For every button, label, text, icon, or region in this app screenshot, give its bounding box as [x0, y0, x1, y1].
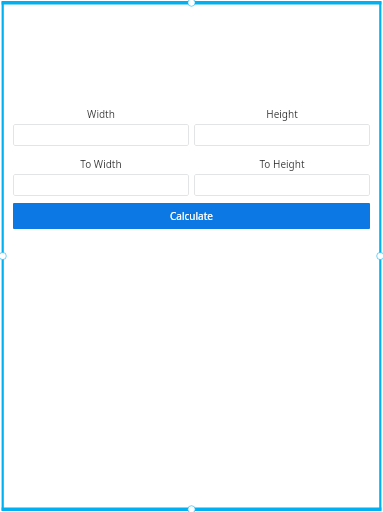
button[interactable]: Height [194, 124, 370, 146]
button[interactable]: Calculate [13, 203, 370, 229]
button[interactable]: To Width [13, 174, 189, 196]
button[interactable]: To Height [194, 174, 370, 196]
staticText: Width [87, 107, 115, 121]
staticText: To Height [259, 157, 305, 171]
staticText: Calculate [170, 209, 213, 223]
staticText: To Width [80, 157, 122, 171]
button[interactable]: Width [13, 124, 189, 146]
staticText: Height [266, 107, 298, 121]
